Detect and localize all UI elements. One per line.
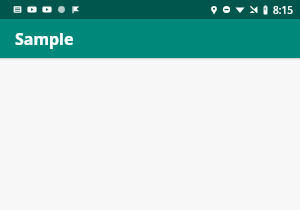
button[interactable]: Sample xyxy=(0,19,300,58)
staticText: 8:15 xyxy=(273,3,293,17)
staticText: Sample xyxy=(15,28,74,50)
